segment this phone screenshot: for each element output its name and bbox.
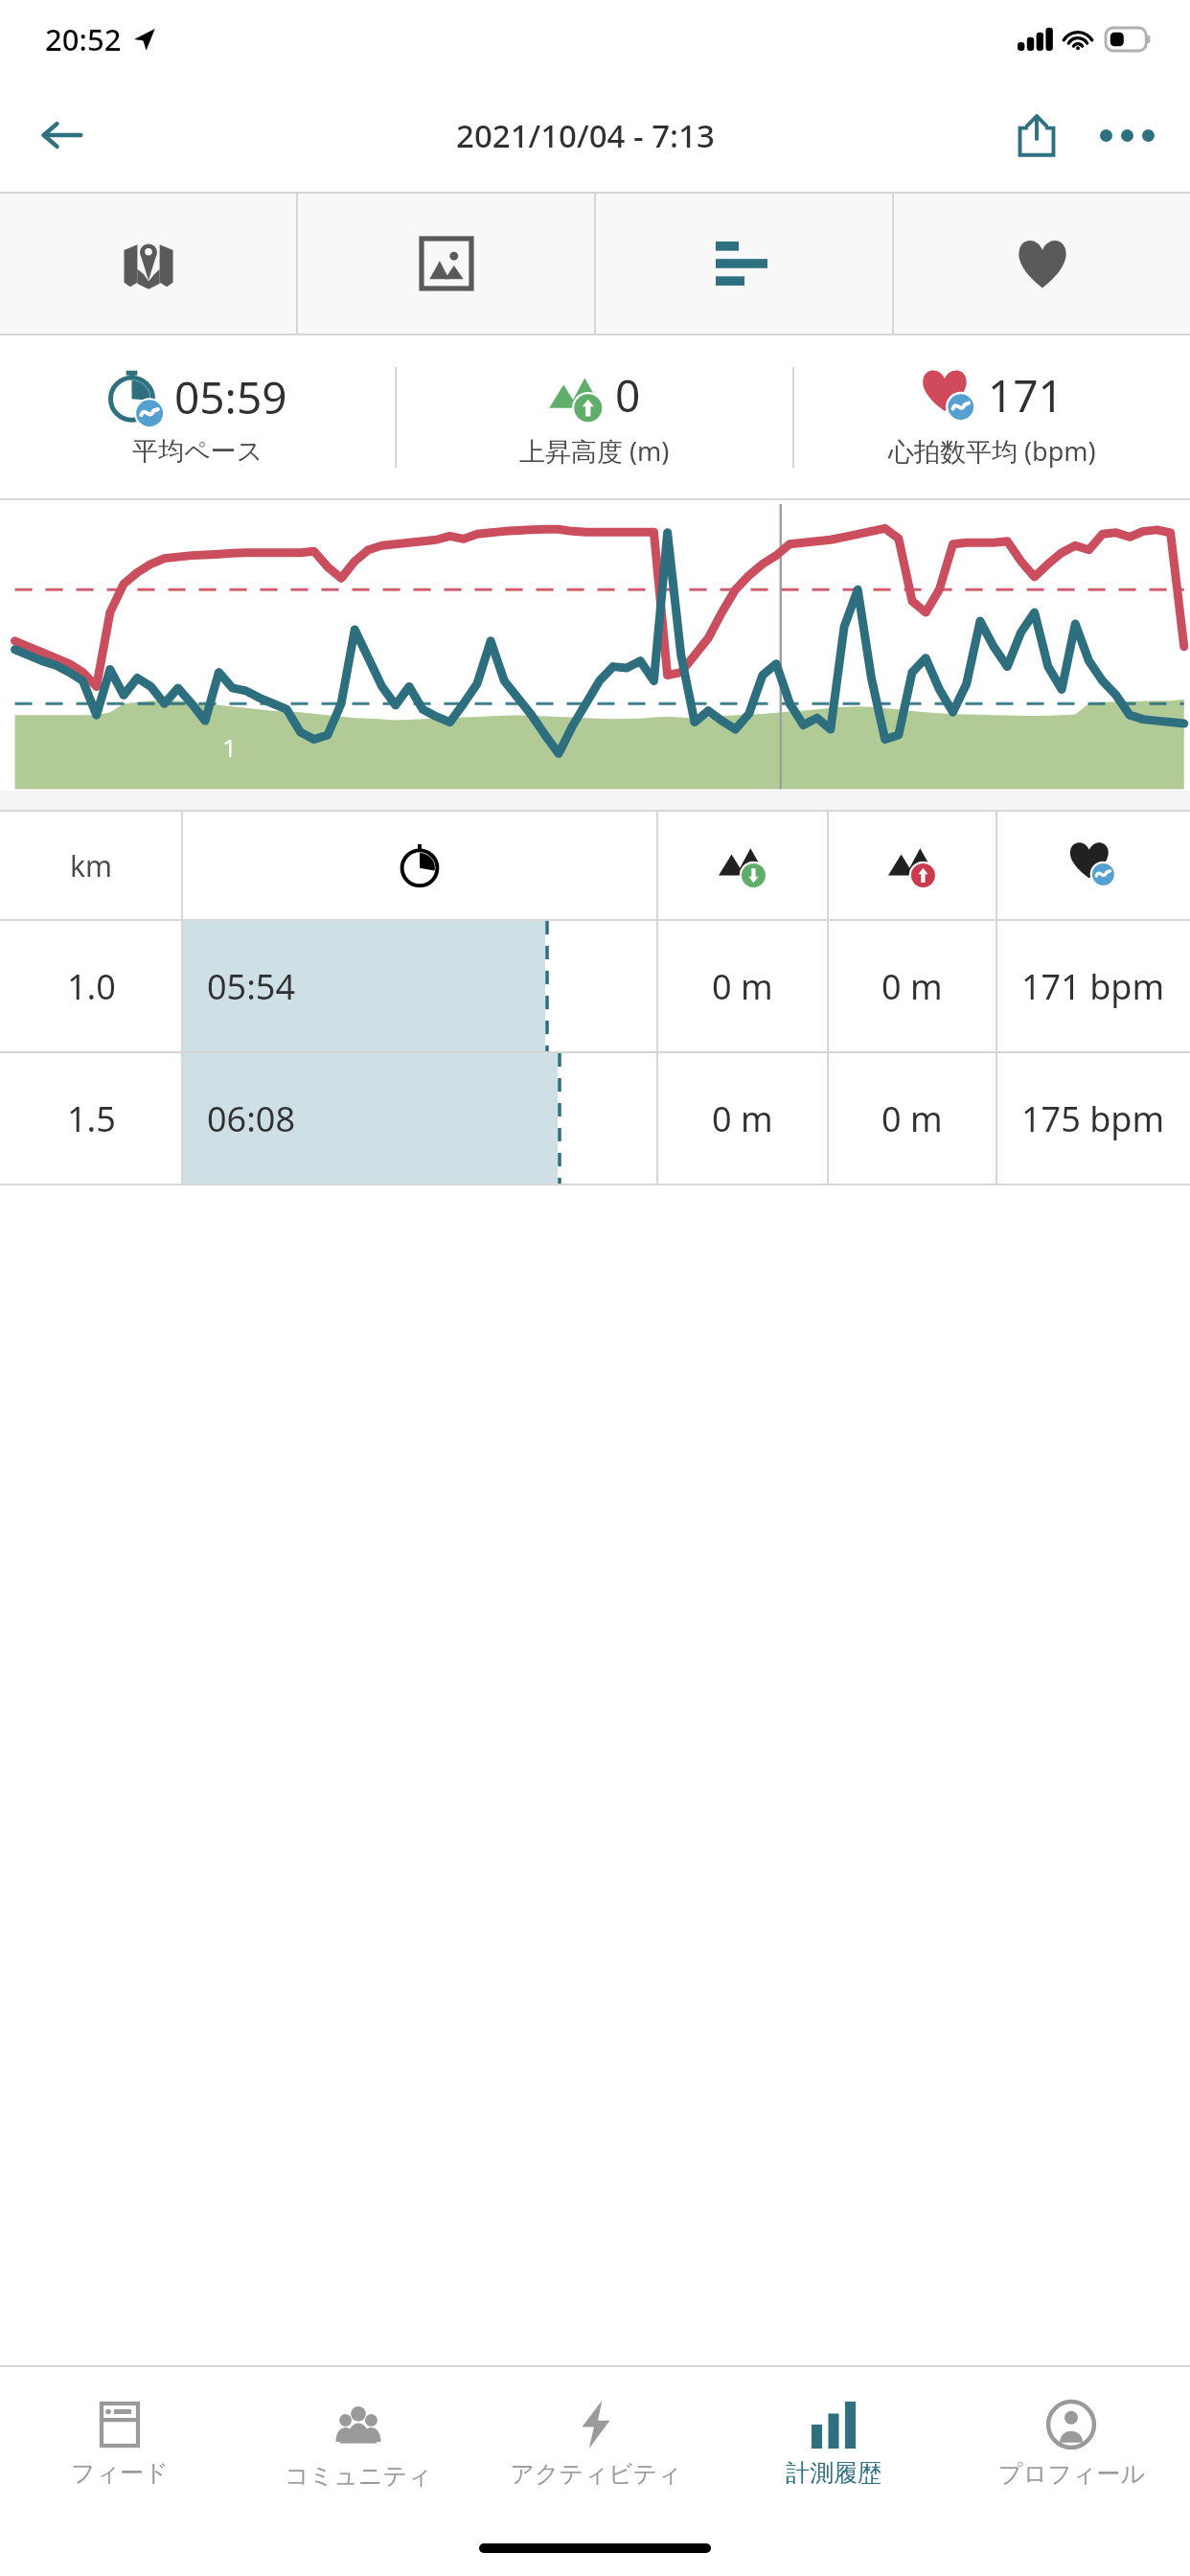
button[interactable]: プロフィール: [952, 2367, 1190, 2520]
staticText: 1.0: [67, 963, 116, 1010]
button[interactable]: Tab: [894, 194, 1190, 333]
staticText: 175 bpm: [1021, 1095, 1165, 1142]
button[interactable]: 05:59: [0, 335, 395, 498]
staticText: 171 bpm: [1021, 963, 1165, 1010]
staticText: 計測履歴: [786, 2458, 881, 2488]
staticText: アクティビティ: [510, 2459, 682, 2489]
button[interactable]: More options: [1087, 95, 1167, 175]
staticText: 0 m: [881, 963, 943, 1010]
staticText: 171: [988, 365, 1064, 425]
staticText: フィード: [71, 2458, 169, 2488]
staticText: 0 m: [712, 1095, 773, 1142]
button[interactable]: Share: [996, 95, 1077, 175]
staticText: 06:08: [207, 1095, 296, 1142]
button[interactable]: Tab: [596, 194, 892, 333]
staticText: コミュニティ: [285, 2461, 432, 2491]
button[interactable]: コミュニティ: [239, 2367, 477, 2520]
staticText: 20:52: [45, 19, 122, 59]
button[interactable]: 1.5: [0, 1053, 1190, 1184]
button[interactable]: フィード: [0, 2367, 239, 2520]
button[interactable]: アクティビティ: [477, 2367, 715, 2520]
staticText: 1.5: [67, 1095, 116, 1142]
staticText: 05:54: [207, 963, 296, 1010]
staticText: 平均ペース: [132, 435, 263, 468]
staticText: 05:59: [174, 367, 287, 427]
staticText: 0 m: [881, 1095, 943, 1142]
staticText: プロフィール: [998, 2459, 1145, 2489]
staticText: 0: [615, 365, 641, 425]
staticText: 2021/10/04 - 7:13: [456, 114, 715, 157]
button[interactable]: 計測履歴: [715, 2367, 952, 2520]
staticText: 0 m: [712, 963, 773, 1010]
staticText: 1: [222, 730, 237, 764]
button[interactable]: 171: [794, 335, 1190, 498]
button[interactable]: Tab: [298, 194, 594, 333]
button[interactable]: Tab: [0, 194, 296, 333]
button[interactable]: 1.0: [0, 921, 1190, 1051]
button[interactable]: 0: [397, 335, 792, 498]
staticText: 上昇高度 (m): [519, 433, 670, 469]
button[interactable]: Back: [27, 100, 98, 171]
staticText: 心拍数平均 (bpm): [888, 433, 1096, 469]
staticText: km: [70, 846, 113, 885]
